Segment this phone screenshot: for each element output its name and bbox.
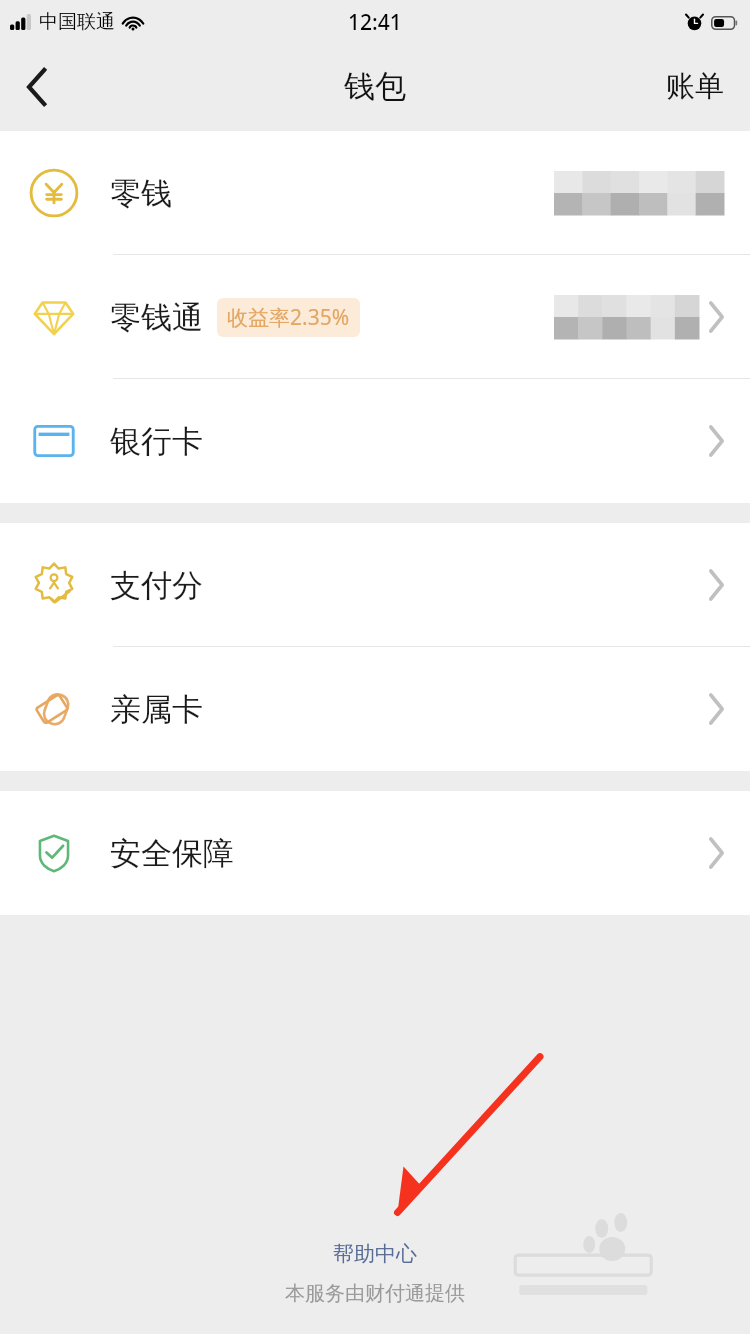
button[interactable]: 零钱 (0, 131, 750, 255)
staticText: 收益率2.35% (227, 303, 350, 332)
staticText: 亲属卡 (110, 690, 203, 729)
button[interactable]: 零钱通 (0, 255, 750, 379)
button[interactable]: 亲属卡 (0, 647, 750, 771)
staticText: 支付分 (110, 566, 203, 605)
button[interactable]: 安全保障 (0, 791, 750, 915)
staticText: 钱包 (344, 67, 406, 106)
button[interactable]: 返回 (8, 58, 66, 116)
staticText: 安全保障 (110, 834, 234, 873)
staticText: 银行卡 (110, 422, 203, 461)
staticText: 12:41 (348, 8, 402, 37)
staticText: 零钱通 (110, 298, 203, 337)
staticText: 账单 (666, 68, 724, 105)
button[interactable]: 支付分 (0, 523, 750, 647)
staticText: 本服务由财付通提供 (285, 1281, 465, 1306)
button[interactable]: 银行卡 (0, 379, 750, 503)
staticText: 中国联通 (39, 10, 115, 34)
button[interactable]: 帮助中心 (321, 1237, 429, 1271)
staticText: 零钱 (110, 174, 172, 213)
button[interactable]: 账单 (640, 56, 750, 117)
staticText: 帮助中心 (333, 1241, 417, 1267)
